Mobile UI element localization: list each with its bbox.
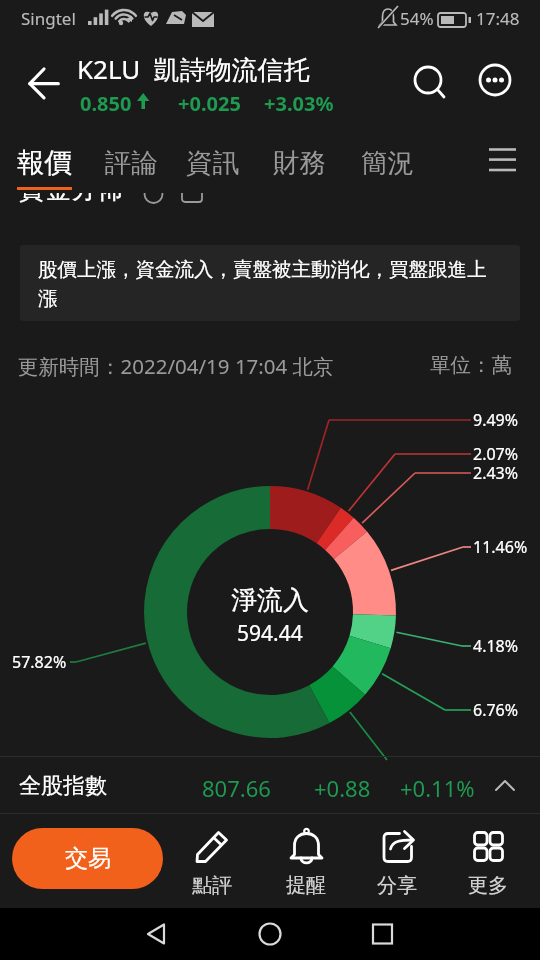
button[interactable]: 點評	[165, 814, 259, 908]
staticText: 提醒	[286, 873, 326, 898]
button[interactable]: Expand	[494, 774, 520, 800]
staticText: 9.49%	[473, 409, 519, 431]
button[interactable]: 財務	[262, 125, 338, 193]
staticText: 交易	[65, 844, 111, 873]
staticText: 11.46%	[473, 536, 528, 558]
staticText: 0.850	[80, 90, 132, 117]
staticText: 4.18%	[473, 635, 519, 657]
staticText: +0.11%	[400, 773, 475, 803]
staticText: 淨流入	[231, 584, 309, 617]
button[interactable]: 交易	[12, 828, 163, 889]
button[interactable]: 更多	[441, 814, 535, 908]
staticText: 2.07%	[473, 443, 519, 465]
staticText: 分享	[377, 873, 417, 898]
staticText: 股價上漲，資金流入，賣盤被主動消化，買盤跟進上漲	[38, 257, 504, 310]
staticText: 807.66	[202, 773, 271, 803]
button[interactable]: More options	[471, 56, 519, 104]
staticText: 簡況	[361, 146, 414, 179]
button[interactable]: 提醒	[259, 814, 353, 908]
button[interactable]: 簡況	[350, 125, 426, 193]
staticText: 更新時間：2022/04/19 17:04 北京	[18, 352, 334, 380]
button[interactable]: 評論	[94, 125, 170, 193]
staticText: 全股指數	[19, 772, 107, 800]
staticText: +0.025	[178, 90, 241, 117]
button[interactable]: 股價上漲，資金流入，賣盤被主動消化，買盤跟進上漲	[20, 245, 520, 321]
staticText: 資訊	[186, 146, 239, 179]
staticText: 報價	[17, 146, 72, 181]
staticText: 評論	[105, 146, 158, 179]
staticText: +3.03%	[264, 90, 334, 117]
staticText: 6.76%	[473, 699, 519, 721]
button[interactable]: Search	[404, 56, 452, 104]
staticText: 財務	[273, 146, 326, 179]
button[interactable]	[0, 756, 540, 813]
button[interactable]: Menu	[479, 135, 527, 185]
button[interactable]: 報價	[6, 125, 82, 193]
staticText: 17:48	[476, 7, 520, 30]
button[interactable]: 資訊	[175, 125, 251, 193]
staticText: 594.44	[237, 619, 303, 648]
staticText: 單位：萬	[430, 352, 512, 378]
button[interactable]: 分享	[350, 814, 444, 908]
staticText: 點評	[192, 873, 232, 898]
staticText: 資金分佈	[19, 173, 123, 206]
staticText: Singtel	[21, 7, 76, 30]
staticText: 更多	[468, 873, 508, 898]
staticText: 54%	[400, 7, 434, 30]
staticText: 2.43%	[473, 462, 519, 484]
staticText: K2LU 凱詩物流信托	[77, 51, 310, 87]
staticText: +0.88	[314, 773, 371, 803]
staticText: 57.82%	[12, 651, 67, 673]
button[interactable]: Back	[14, 54, 74, 114]
